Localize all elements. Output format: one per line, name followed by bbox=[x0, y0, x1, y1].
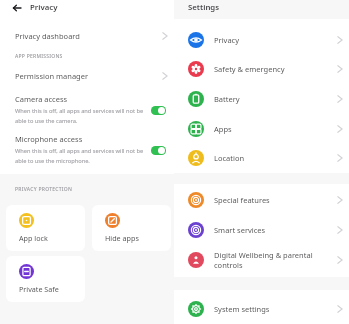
button[interactable]: Smart services bbox=[174, 216, 349, 244]
staticText: App lock bbox=[19, 233, 48, 243]
button[interactable]: Privacy bbox=[174, 26, 349, 54]
staticText: Privacy bbox=[30, 2, 58, 13]
staticText: When this is off, all apps and services … bbox=[15, 147, 144, 165]
button[interactable]: Microphone access bbox=[0, 134, 174, 165]
button[interactable]: Camera access bbox=[0, 94, 174, 125]
button[interactable]: Special features bbox=[174, 186, 349, 214]
button[interactable]: Location bbox=[174, 144, 349, 172]
staticText: Location bbox=[214, 153, 245, 163]
button[interactable]: Safety & emergency bbox=[174, 55, 349, 83]
button[interactable]: Private Safe bbox=[6, 256, 85, 302]
button[interactable]: Apps bbox=[174, 115, 349, 143]
button[interactable]: System settings bbox=[174, 295, 349, 323]
staticText: Privacy dashboard bbox=[15, 31, 80, 41]
staticText: Battery bbox=[214, 94, 240, 104]
staticText: PRIVACY PROTECTION bbox=[15, 186, 73, 193]
button[interactable]: Back bbox=[0, 0, 174, 15]
other: Back bbox=[12, 3, 22, 13]
staticText: Microphone access bbox=[15, 134, 83, 144]
staticText: Smart services bbox=[214, 225, 266, 235]
button[interactable]: Battery bbox=[174, 85, 349, 113]
staticText: Hide apps bbox=[105, 233, 139, 243]
staticText: Private Safe bbox=[19, 284, 59, 294]
button[interactable]: App lock bbox=[6, 205, 85, 251]
staticText: Apps bbox=[214, 124, 232, 134]
staticText: Safety & emergency bbox=[214, 64, 285, 74]
staticText: Privacy bbox=[214, 35, 240, 45]
button[interactable]: Digital Wellbeing & parental controls bbox=[174, 246, 349, 274]
button[interactable]: Permission manager bbox=[0, 67, 174, 85]
staticText: Camera access bbox=[15, 94, 68, 104]
button[interactable]: Privacy dashboard bbox=[0, 27, 174, 45]
staticText: When this is off, all apps and services … bbox=[15, 107, 144, 125]
staticText: Permission manager bbox=[15, 71, 89, 81]
staticText: System settings bbox=[214, 304, 270, 314]
button[interactable]: Hide apps bbox=[92, 205, 171, 251]
staticText: Special features bbox=[214, 195, 270, 205]
staticText: APP PERMISSIONS bbox=[15, 53, 63, 60]
staticText: Digital Wellbeing & parental controls bbox=[214, 250, 313, 270]
staticText: Settings bbox=[188, 2, 220, 13]
